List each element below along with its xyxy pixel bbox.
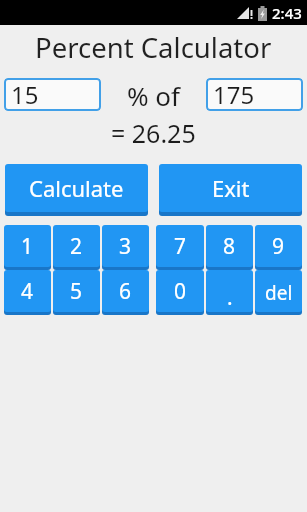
staticText: 9 [272, 232, 285, 261]
button[interactable]: 0 [156, 270, 204, 312]
button[interactable]: 3 [102, 225, 149, 267]
staticText: del [265, 280, 293, 306]
button[interactable]: 6 [102, 270, 149, 312]
staticText: 0 [174, 277, 187, 306]
staticText: 175 [213, 78, 255, 111]
staticText: 7 [174, 232, 187, 261]
staticText: 3 [119, 232, 132, 261]
staticText: Exit [212, 173, 250, 203]
button[interactable]: 9 [255, 225, 302, 267]
button[interactable]: Exit [159, 164, 302, 212]
button[interactable]: 1 [4, 225, 51, 267]
staticText: . [227, 283, 233, 312]
staticText: 8 [223, 232, 236, 261]
button[interactable]: 2 [53, 225, 100, 267]
staticText: 2:43 [272, 3, 302, 23]
staticText: Percent Calculator [35, 29, 272, 66]
button[interactable]: 15 [4, 78, 101, 111]
staticText: 6 [119, 277, 132, 306]
staticText: = 26.25 [111, 116, 196, 150]
button[interactable]: 8 [206, 225, 253, 267]
staticText: 4 [21, 277, 34, 306]
button[interactable]: 5 [53, 270, 100, 312]
staticText: 5 [70, 277, 83, 306]
staticText: % of [127, 78, 181, 111]
staticText: 15 [11, 78, 39, 111]
button[interactable]: Calculate [5, 164, 148, 212]
button[interactable]: 7 [156, 225, 204, 267]
button[interactable]: del [255, 270, 302, 312]
button[interactable]: . [206, 270, 253, 312]
button[interactable]: 175 [206, 78, 303, 111]
staticText: 2 [70, 232, 83, 261]
button[interactable]: 4 [4, 270, 51, 312]
staticText: 1 [21, 232, 34, 261]
staticText: Calculate [29, 173, 124, 203]
